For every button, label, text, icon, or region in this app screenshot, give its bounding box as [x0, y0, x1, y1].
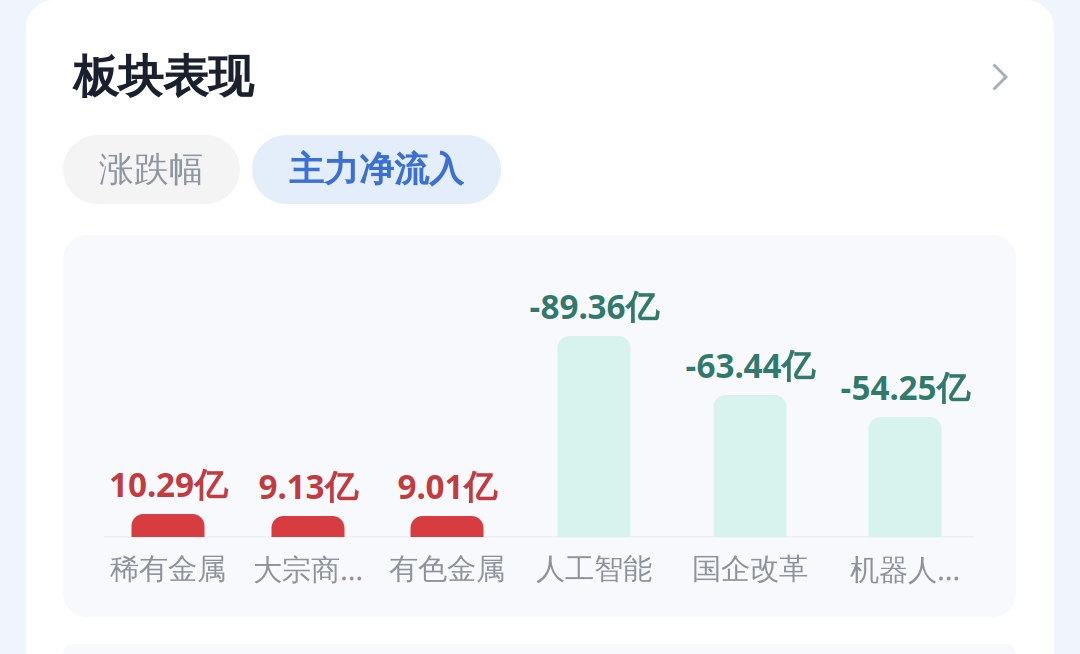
button[interactable]: 国企改革	[650, 549, 850, 589]
staticText: 稀有金属	[110, 551, 226, 587]
staticText: -54.25亿	[840, 365, 969, 409]
staticText: 大宗商…	[253, 549, 363, 588]
staticText: 机器人…	[850, 549, 960, 588]
button[interactable]: 稀有金属	[68, 549, 268, 589]
button[interactable]: 涨跌幅	[63, 135, 240, 204]
button[interactable]: 机器人…	[805, 549, 1005, 589]
button[interactable]: 大宗商…	[208, 549, 408, 589]
button[interactable]: 有色金属	[347, 549, 547, 589]
staticText: 主力净流入	[289, 148, 464, 191]
staticText: 国企改革	[692, 551, 808, 587]
staticText: 有色金属	[389, 551, 505, 587]
staticText: 10.29亿	[109, 462, 227, 506]
staticText: 板块表现	[73, 49, 253, 105]
staticText: 涨跌幅	[99, 148, 204, 191]
staticText: -63.44亿	[685, 343, 814, 387]
button[interactable]: 人工智能	[494, 549, 694, 589]
staticText: -89.36亿	[529, 284, 658, 328]
staticText: 人工智能	[536, 551, 652, 587]
staticText: 9.13亿	[258, 464, 357, 508]
button[interactable]: 主力净流入	[252, 135, 501, 204]
staticText: 9.01亿	[397, 464, 496, 508]
button[interactable]: 板块表现	[53, 40, 1027, 114]
